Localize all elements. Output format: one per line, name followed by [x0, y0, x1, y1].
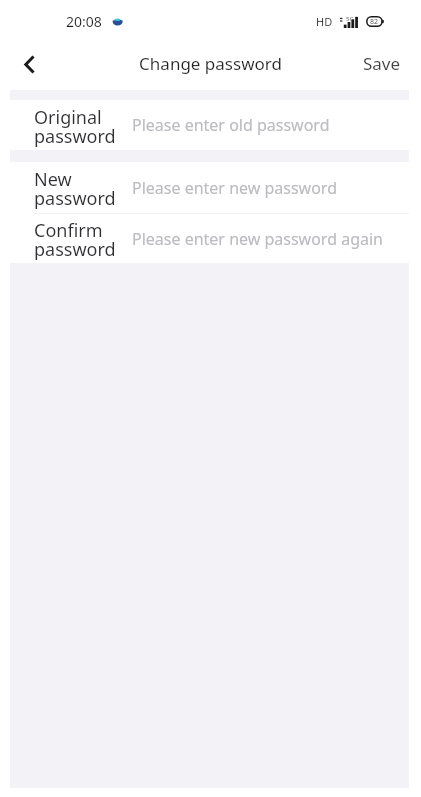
staticText: Original password	[34, 105, 122, 149]
button[interactable]: Save	[349, 40, 421, 90]
button[interactable]: Confirm password	[10, 214, 409, 263]
staticText: 5G	[346, 15, 354, 23]
staticText: 82	[370, 17, 379, 27]
staticText: Confirm password	[34, 218, 122, 262]
staticText: Please enter new password again	[132, 228, 383, 250]
staticText: Please enter new password	[132, 177, 337, 199]
button[interactable]: New password	[10, 162, 409, 213]
staticText: 20:08	[66, 12, 102, 31]
button[interactable]: Original password	[10, 100, 409, 150]
staticText: New password	[34, 167, 122, 211]
staticText: HD	[316, 14, 333, 29]
button[interactable]: Back	[11, 46, 47, 82]
staticText: Please enter old password	[132, 114, 330, 136]
staticText: Save	[363, 52, 401, 75]
staticText: Change password	[139, 52, 282, 75]
